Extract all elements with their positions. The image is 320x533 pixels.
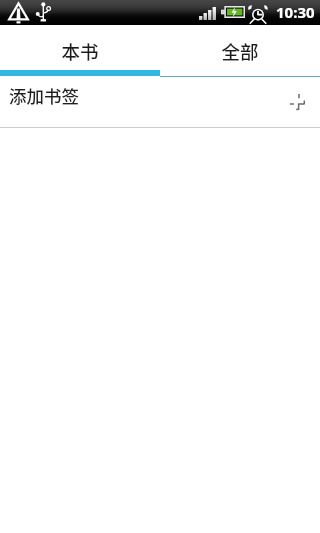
button[interactable]: 全部 <box>160 25 320 65</box>
button[interactable]: 本书 <box>0 25 160 65</box>
button[interactable]: Add bookmark <box>286 91 308 113</box>
staticText: 全部 <box>221 38 259 65</box>
staticText: 本书 <box>61 38 99 65</box>
staticText: 10:30 <box>276 2 315 22</box>
staticText: 添加书签 <box>9 83 79 108</box>
button[interactable]: 添加书签 <box>0 77 320 127</box>
